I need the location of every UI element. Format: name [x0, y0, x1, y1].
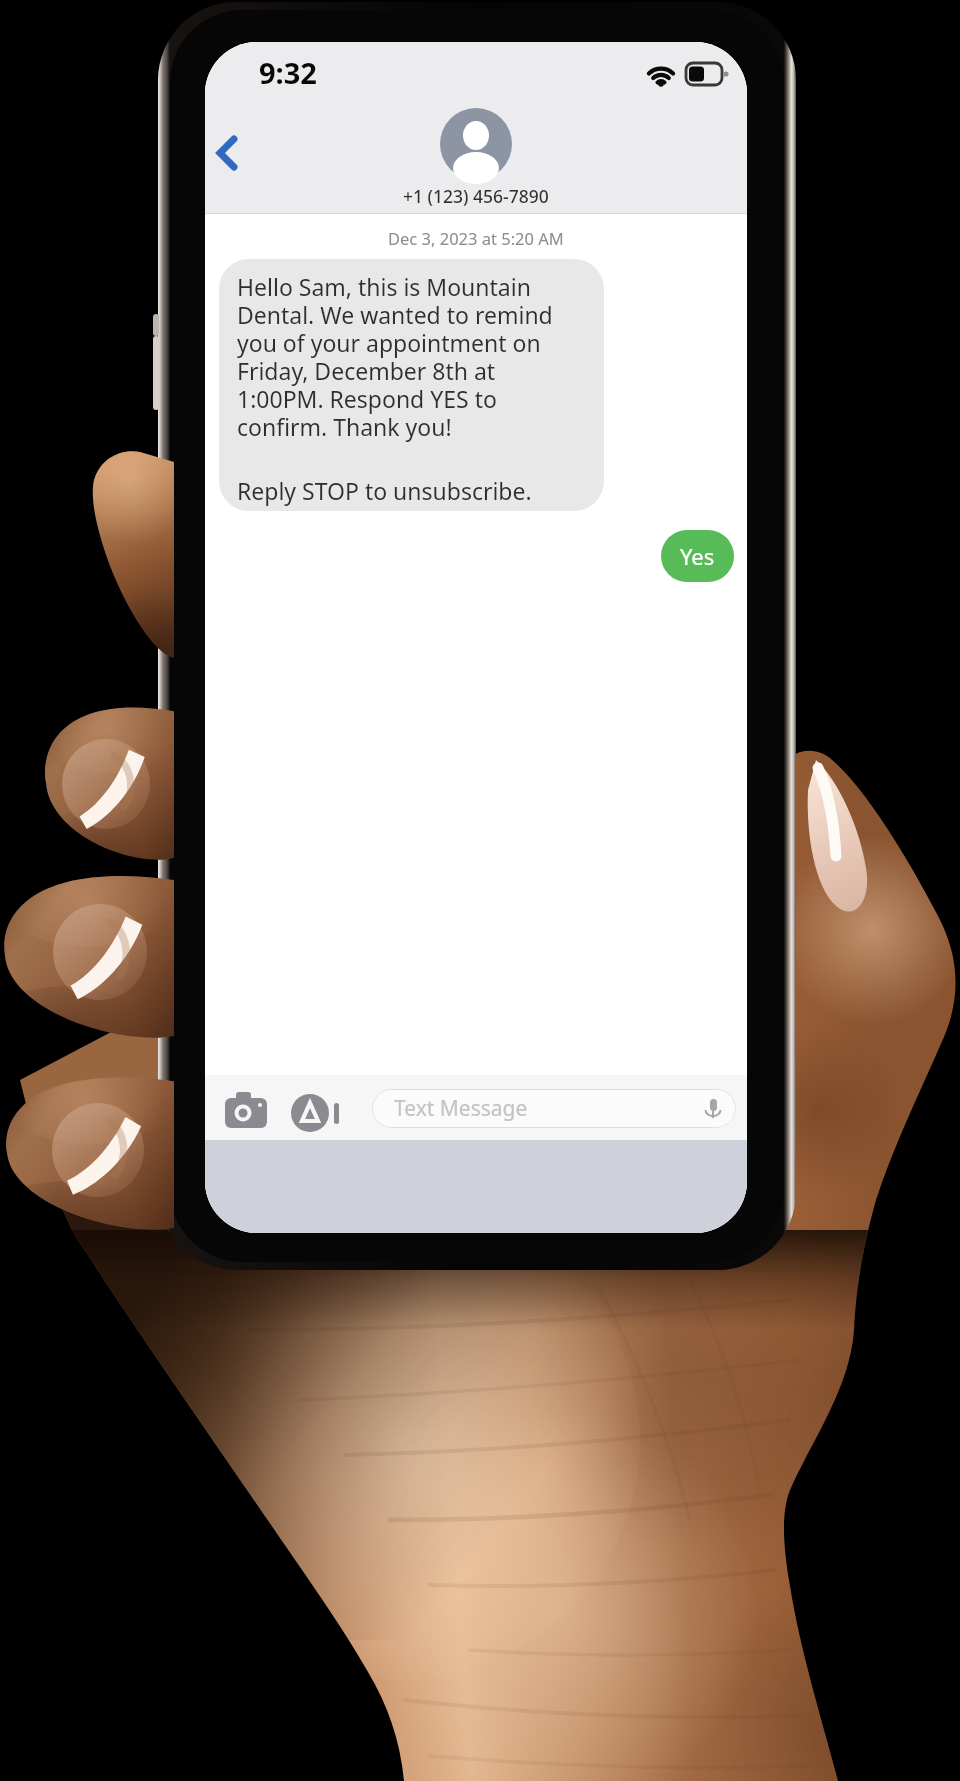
staticText: Dec 3, 2023 at 5:20 AM	[388, 227, 564, 249]
button[interactable]	[219, 259, 604, 511]
staticText: Yes	[680, 541, 715, 571]
staticText: Text Message	[394, 1094, 528, 1123]
staticText: Hello Sam, this is Mountain Dental. We w…	[237, 271, 553, 443]
button[interactable]: Back	[205, 120, 261, 196]
button[interactable]: Yes	[661, 530, 734, 582]
staticText: +1 (123) 456-7890	[403, 184, 549, 208]
staticText: 9:32	[259, 53, 317, 92]
staticText: Reply STOP to unsubscribe.	[237, 475, 532, 506]
button[interactable]: Camera	[219, 1085, 271, 1131]
button[interactable]: Apps	[289, 1085, 341, 1131]
button[interactable]: Text Message	[372, 1089, 736, 1128]
